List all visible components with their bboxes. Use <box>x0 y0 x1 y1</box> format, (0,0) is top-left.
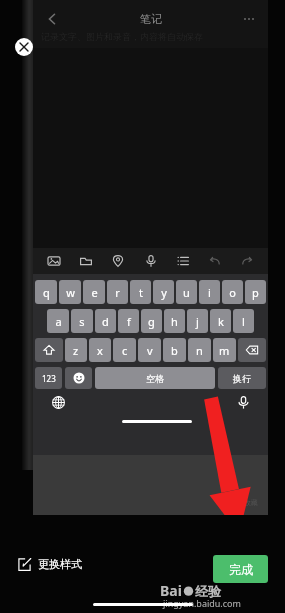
button[interactable]: Close <box>15 38 33 56</box>
button[interactable]: f <box>118 309 139 333</box>
button[interactable]: Files <box>75 250 97 272</box>
button[interactable]: x <box>89 338 111 362</box>
button[interactable]: Shift <box>35 338 63 362</box>
staticText: l <box>242 314 245 329</box>
staticText: 更换样式 <box>38 557 82 571</box>
button[interactable]: Location <box>107 250 129 272</box>
staticText: 微信收藏 <box>230 498 258 507</box>
staticText: e <box>91 285 98 300</box>
staticText: k <box>218 314 224 329</box>
staticText: v <box>147 343 153 358</box>
button[interactable]: Switch language <box>47 391 69 413</box>
staticText: m <box>219 343 230 358</box>
button[interactable]: k <box>210 309 231 333</box>
button[interactable]: t <box>130 280 151 304</box>
button[interactable]: Emoji <box>65 367 92 389</box>
staticText: f <box>127 314 131 329</box>
staticText: 笔记 <box>140 12 162 26</box>
staticText: r <box>115 285 120 300</box>
button[interactable]: Voice input <box>232 391 254 413</box>
button[interactable]: 换行 <box>218 367 266 389</box>
staticText: 123 <box>42 373 56 384</box>
staticText: o <box>229 285 236 300</box>
button[interactable]: Insert image <box>43 250 65 272</box>
button[interactable]: Back <box>37 4 67 34</box>
staticText: 记录文字、图片和录音，内容将自动保存 <box>41 31 203 42</box>
button[interactable]: j <box>187 309 208 333</box>
button[interactable]: w <box>59 280 81 304</box>
staticText: a <box>55 314 62 329</box>
staticText: 空格 <box>146 373 164 384</box>
staticText: g <box>148 314 155 329</box>
button[interactable]: e <box>83 280 105 304</box>
button[interactable]: h <box>164 309 185 333</box>
button[interactable]: Undo <box>204 250 226 272</box>
button[interactable]: s <box>71 309 93 333</box>
button[interactable]: r <box>107 280 128 304</box>
button[interactable]: 完成 <box>213 555 268 583</box>
button[interactable]: g <box>141 309 162 333</box>
button[interactable]: 更换样式 <box>14 553 86 575</box>
staticText: w <box>66 285 75 300</box>
staticText: jingyan.baidu.com <box>163 597 241 609</box>
button[interactable]: u <box>176 280 197 304</box>
button[interactable]: m <box>213 338 236 362</box>
button[interactable]: Redo <box>236 250 258 272</box>
button[interactable]: 空格 <box>95 367 215 389</box>
staticText: b <box>171 343 178 358</box>
staticText: 完成 <box>229 562 253 577</box>
staticText: p <box>252 285 259 300</box>
button[interactable]: q <box>35 280 57 304</box>
staticText: q <box>43 285 50 300</box>
button[interactable]: a <box>47 309 69 333</box>
staticText: i <box>208 285 211 300</box>
button[interactable]: Voice record <box>140 250 162 272</box>
staticText: y <box>161 285 167 300</box>
button[interactable]: b <box>163 338 186 362</box>
button[interactable]: v <box>138 338 161 362</box>
button[interactable]: o <box>222 280 243 304</box>
staticText: t <box>139 285 143 300</box>
button[interactable]: l <box>233 309 254 333</box>
button[interactable]: Backspace <box>238 338 266 362</box>
staticText: d <box>102 314 109 329</box>
staticText: s <box>79 314 85 329</box>
button[interactable]: 123 <box>35 367 62 389</box>
staticText: c <box>122 343 128 358</box>
staticText: 换行 <box>233 373 251 384</box>
button[interactable]: List <box>172 250 194 272</box>
button[interactable]: z <box>65 338 87 362</box>
staticText: z <box>73 343 79 358</box>
button[interactable]: y <box>153 280 174 304</box>
button[interactable]: More options <box>234 4 264 34</box>
button[interactable]: c <box>113 338 136 362</box>
staticText: Bai <box>160 581 182 600</box>
button[interactable]: p <box>245 280 266 304</box>
button[interactable]: n <box>188 338 211 362</box>
staticText: j <box>196 314 199 329</box>
staticText: 经验 <box>195 583 221 599</box>
staticText: h <box>171 314 178 329</box>
button[interactable]: d <box>95 309 116 333</box>
staticText: u <box>183 285 190 300</box>
staticText: n <box>196 343 203 358</box>
staticText: x <box>97 343 103 358</box>
button[interactable]: i <box>199 280 220 304</box>
